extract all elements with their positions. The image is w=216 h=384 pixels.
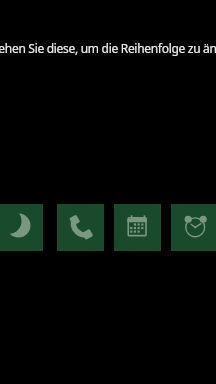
staticText: Ziehen Sie diese, um die Reihenfolge zu … — [0, 40, 216, 56]
button[interactable]: Calendar — [114, 204, 161, 251]
button[interactable]: Phone — [57, 204, 104, 251]
button[interactable]: Bedtime mode — [0, 204, 43, 251]
button[interactable]: Alarm — [171, 204, 216, 251]
